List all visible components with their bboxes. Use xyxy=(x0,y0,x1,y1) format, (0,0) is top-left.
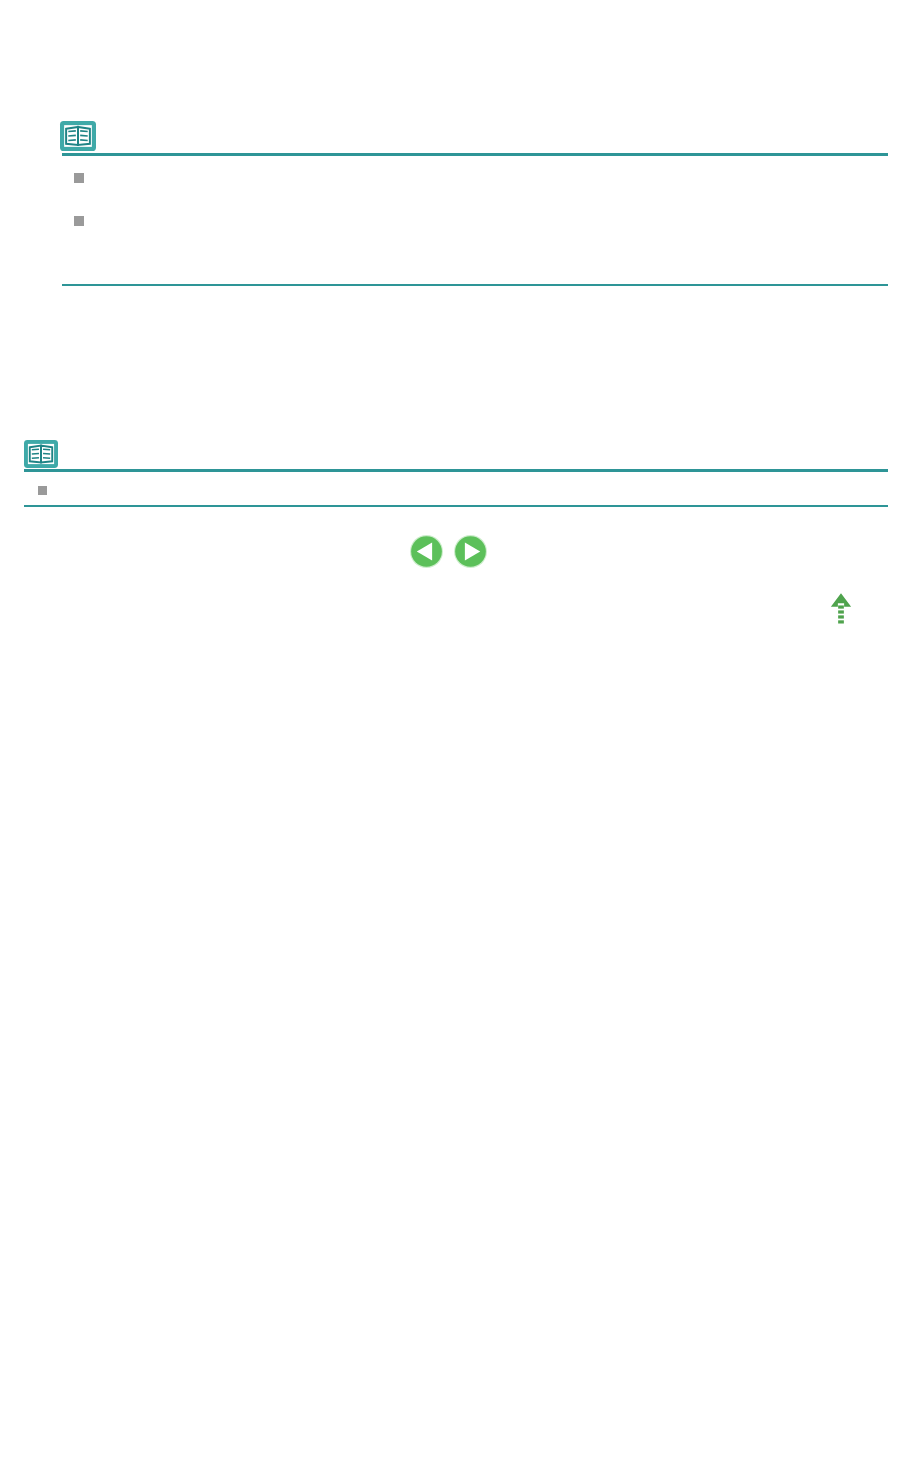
button[interactable]: Next page xyxy=(454,535,487,568)
button[interactable]: Previous page xyxy=(410,535,443,568)
button[interactable]: Page top xyxy=(828,592,854,624)
